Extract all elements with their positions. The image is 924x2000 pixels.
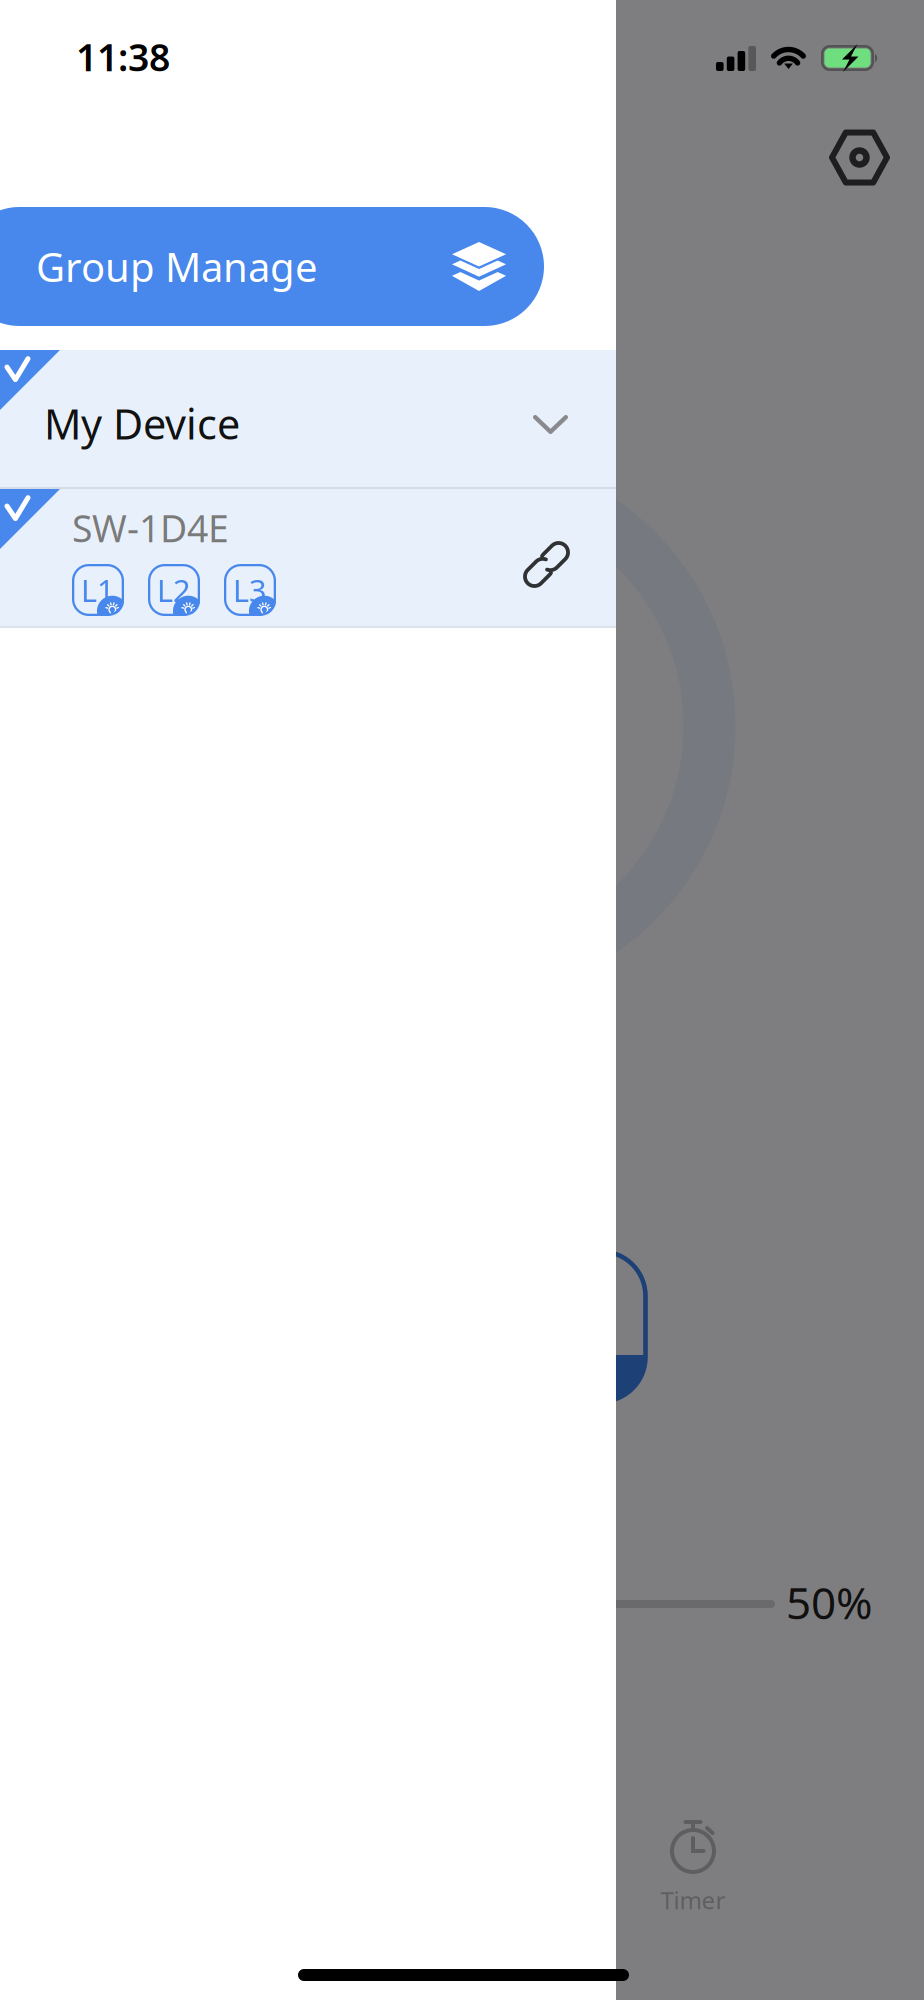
button[interactable]: Settings xyxy=(812,110,907,205)
staticText: Group Manage xyxy=(36,240,318,293)
staticText: L1 xyxy=(81,570,115,610)
staticText: Timer xyxy=(660,1884,725,1916)
button[interactable]: Timer xyxy=(613,1817,773,1929)
button[interactable]: SW-1D4E xyxy=(0,489,616,626)
staticText: L2 xyxy=(157,570,191,610)
staticText: 50% xyxy=(786,1573,873,1631)
button[interactable]: L3 xyxy=(224,564,276,616)
staticText: My Device xyxy=(44,396,240,451)
button[interactable]: L1 xyxy=(72,564,124,616)
staticText: L3 xyxy=(233,570,267,610)
button[interactable]: Link device xyxy=(521,539,572,590)
button[interactable]: My Device xyxy=(0,350,616,487)
button[interactable]: Group Manage xyxy=(0,207,616,326)
staticText: SW-1D4E xyxy=(72,503,229,553)
button[interactable]: L2 xyxy=(148,564,200,616)
staticText: 11:38 xyxy=(76,32,170,82)
